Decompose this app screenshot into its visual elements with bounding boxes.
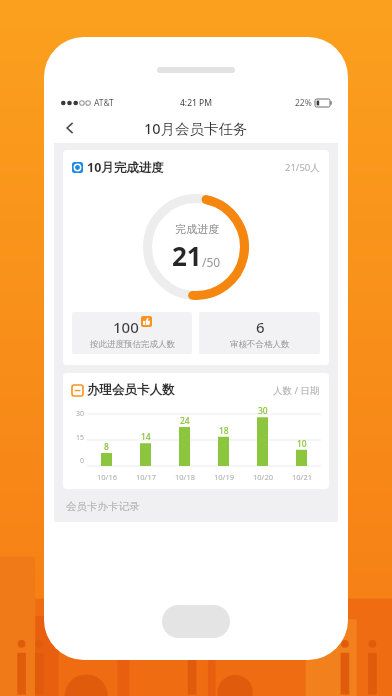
staticText: 完成进度 bbox=[175, 222, 219, 236]
staticText: 14 bbox=[141, 431, 151, 443]
staticText: 22% bbox=[295, 97, 312, 109]
staticText: 21/50人 bbox=[285, 161, 320, 174]
staticText: 8 bbox=[104, 441, 109, 453]
staticText: 21 bbox=[172, 238, 202, 273]
staticText: 人数 / 日期 bbox=[273, 384, 320, 397]
staticText: 10/19 bbox=[214, 472, 234, 482]
staticText: 6 bbox=[256, 317, 265, 337]
button[interactable]: Back bbox=[54, 112, 86, 143]
staticText: 10/16 bbox=[97, 472, 117, 482]
staticText: 15 bbox=[76, 433, 85, 443]
staticText: 10月会员卡任务 bbox=[144, 118, 248, 138]
staticText: 10月完成进度 bbox=[87, 159, 164, 176]
staticText: /50 bbox=[202, 254, 221, 270]
button[interactable]: 6 bbox=[199, 312, 320, 354]
staticText: 办理会员卡人数 bbox=[87, 382, 175, 398]
staticText: 4:21 PM bbox=[180, 97, 213, 109]
staticText: 会员卡办卡记录 bbox=[66, 500, 140, 513]
staticText: 18 bbox=[219, 425, 229, 437]
staticText: 0 bbox=[80, 456, 85, 466]
staticText: 10 bbox=[297, 438, 307, 450]
button[interactable]: 10月完成进度 bbox=[63, 150, 329, 365]
staticText: 审核不合格人数 bbox=[230, 339, 290, 350]
staticText: 10/17 bbox=[136, 472, 156, 482]
staticText: AT&T bbox=[94, 97, 114, 109]
staticText: 10/20 bbox=[253, 472, 273, 482]
button[interactable]: 办理会员卡人数 bbox=[63, 373, 329, 489]
staticText: 10/18 bbox=[175, 472, 195, 482]
staticText: 30 bbox=[76, 409, 85, 419]
staticText: 30 bbox=[258, 405, 268, 417]
staticText: 24 bbox=[180, 415, 190, 427]
staticText: 10/21 bbox=[292, 472, 312, 482]
staticText: 按此进度预估完成人数 bbox=[90, 339, 175, 350]
staticText: 100 bbox=[113, 317, 139, 337]
button[interactable]: 100 bbox=[72, 312, 192, 354]
